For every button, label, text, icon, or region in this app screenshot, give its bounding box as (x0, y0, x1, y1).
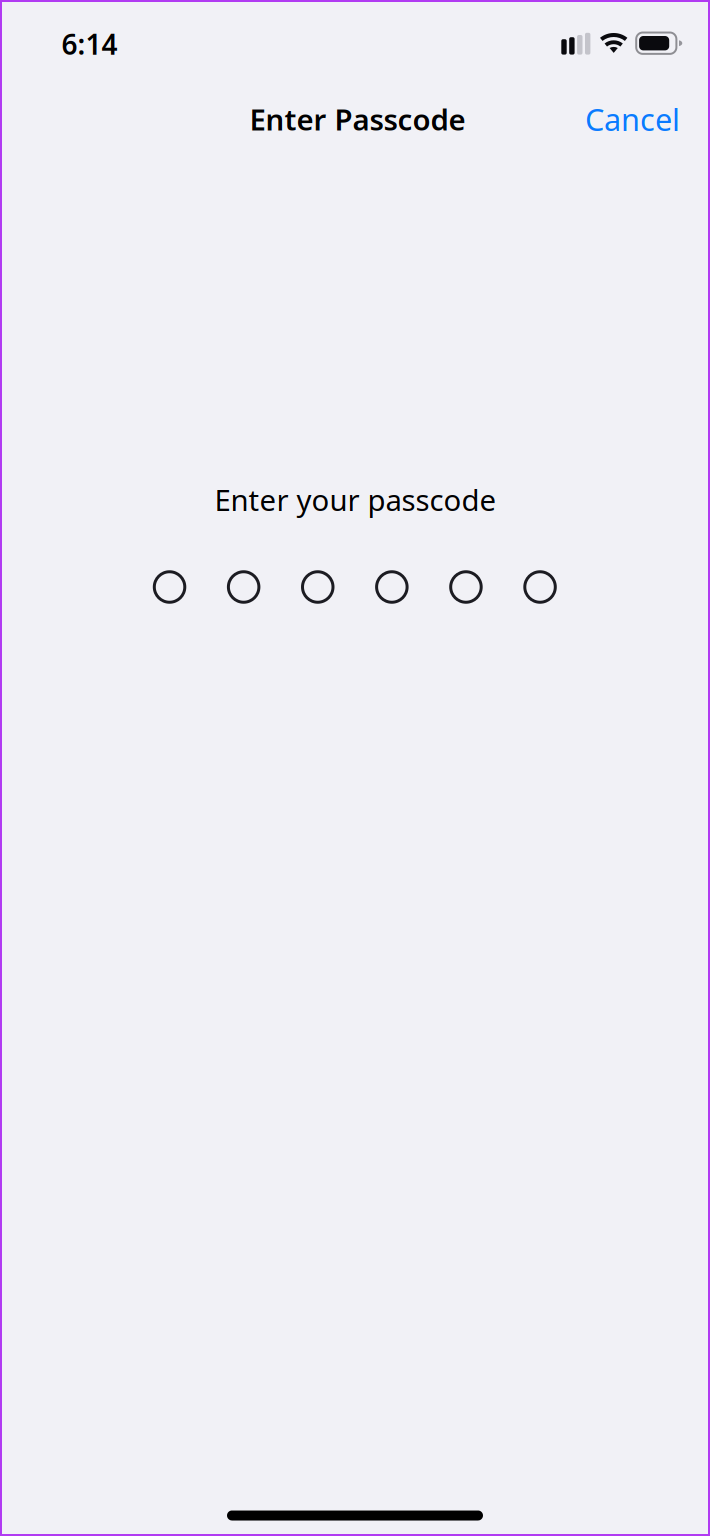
staticText: Cancel (585, 99, 680, 139)
staticText: Enter your passcode (214, 480, 496, 519)
button[interactable]: Cancel (560, 95, 680, 143)
staticText: Enter Passcode (249, 99, 465, 138)
staticText: 6:14 (61, 25, 117, 63)
